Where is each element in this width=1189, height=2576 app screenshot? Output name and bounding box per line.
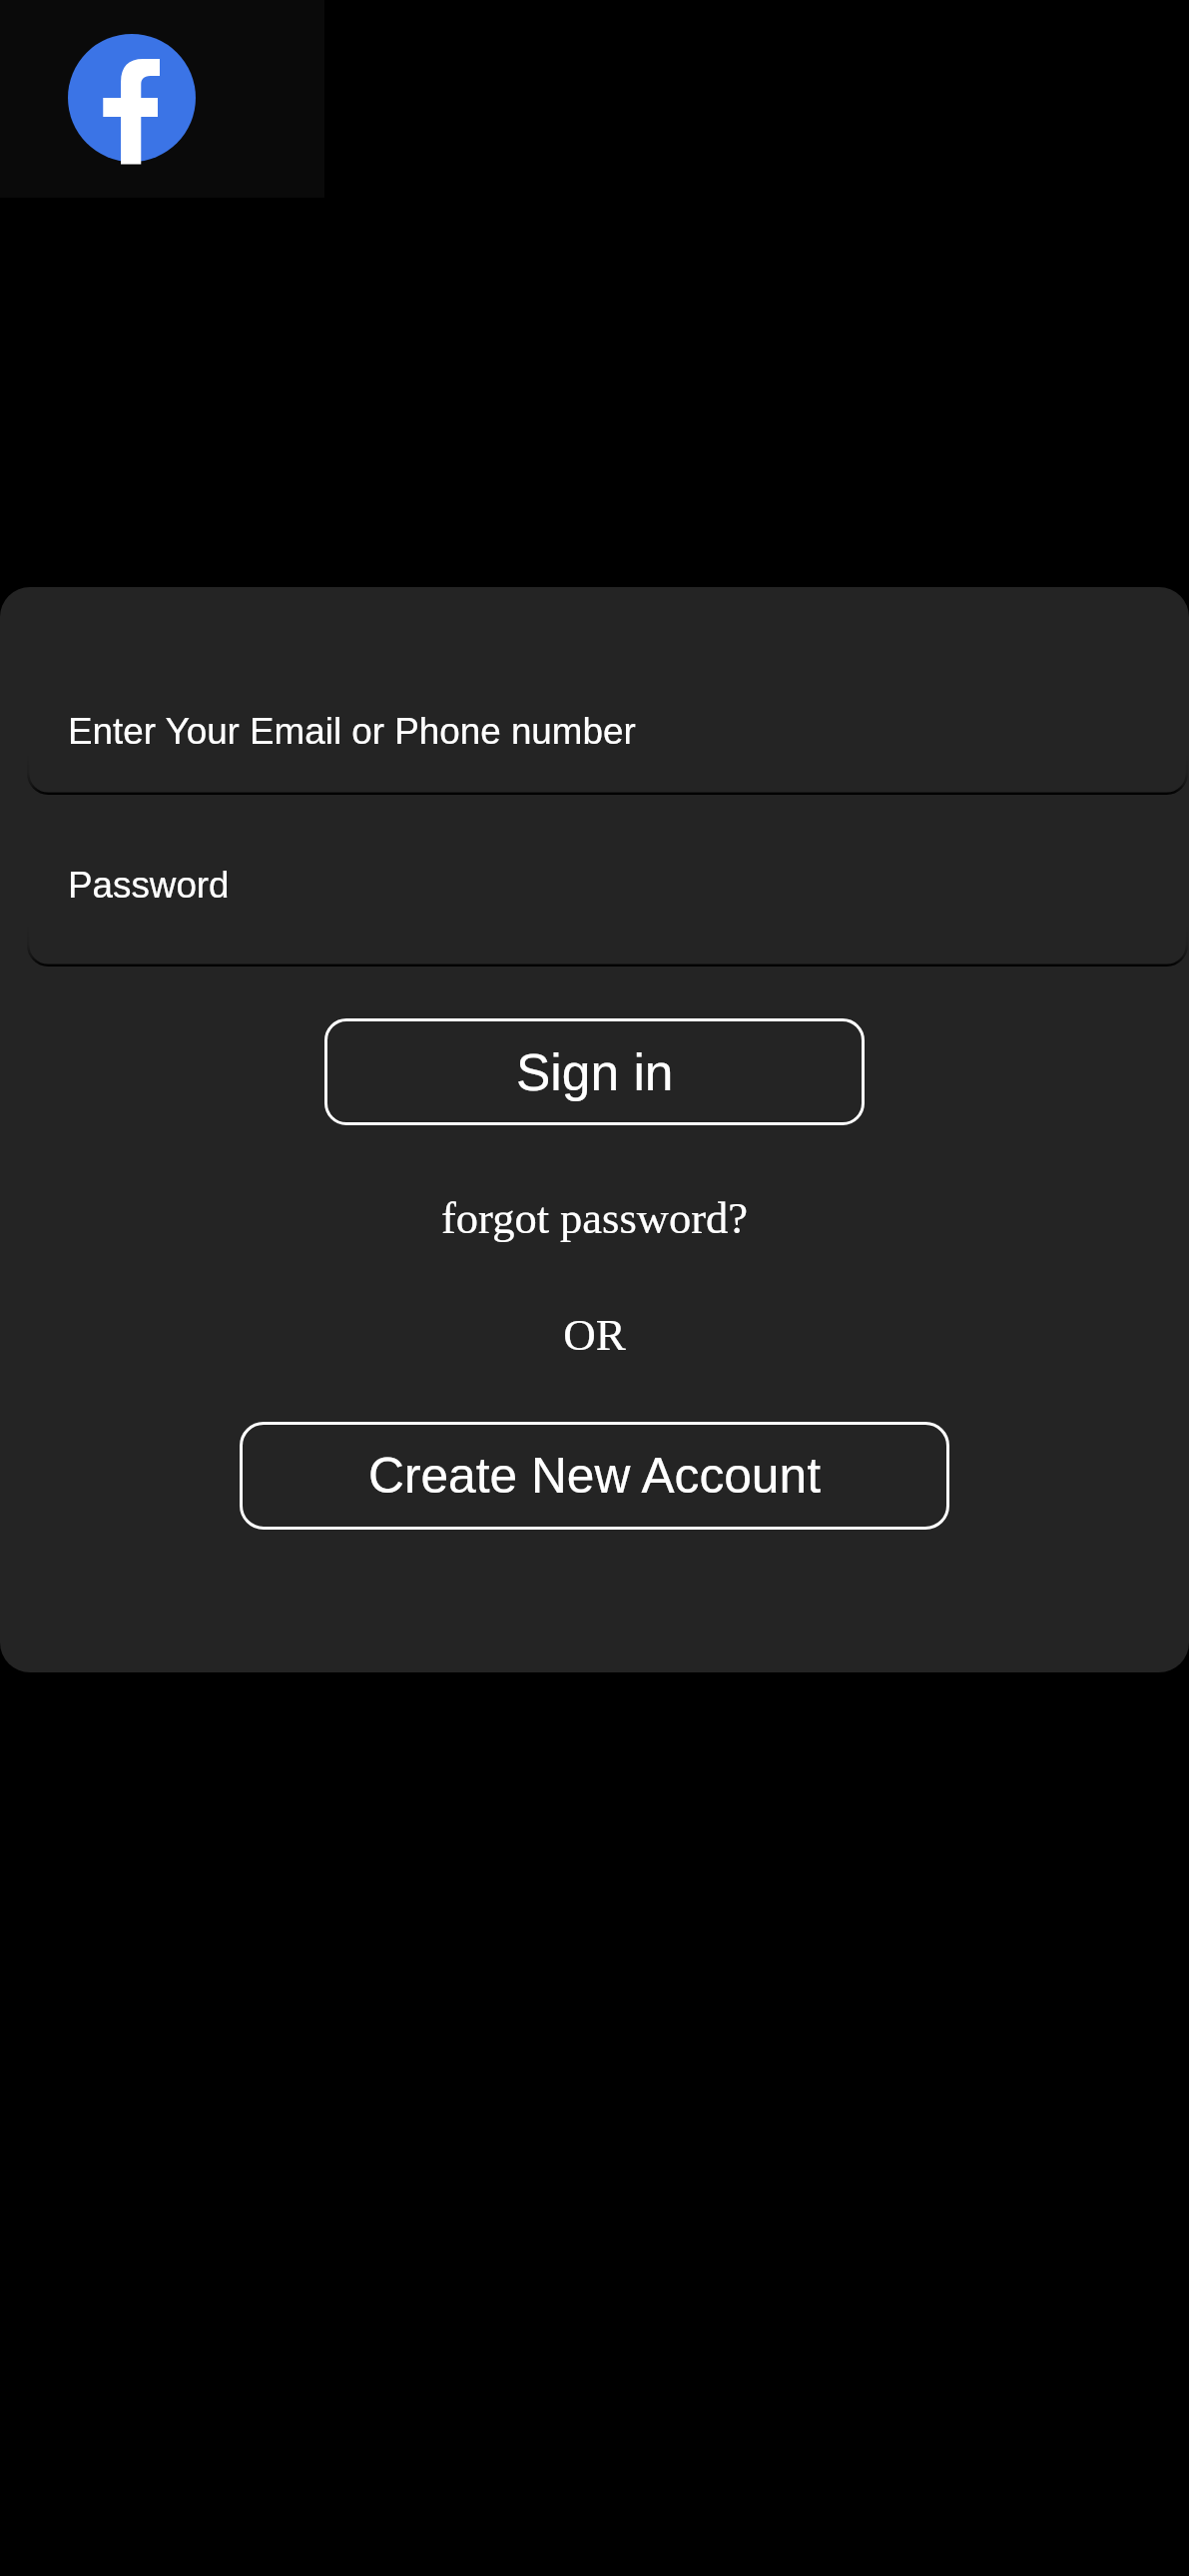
staticText: Create New Account (368, 1448, 821, 1504)
button[interactable]: Enter Your Email or Phone number (27, 656, 1188, 795)
button[interactable]: Facebook (0, 0, 324, 198)
staticText: Sign in (516, 1043, 674, 1101)
button[interactable]: Create New Account (240, 1422, 949, 1530)
staticText: OR (563, 1310, 626, 1360)
button[interactable]: Sign in (324, 1018, 865, 1125)
staticText: Enter Your Email or Phone number (68, 711, 636, 752)
button[interactable]: forgot password? (441, 1193, 748, 1242)
staticText: Password (68, 865, 230, 906)
button[interactable]: Password (27, 826, 1188, 966)
